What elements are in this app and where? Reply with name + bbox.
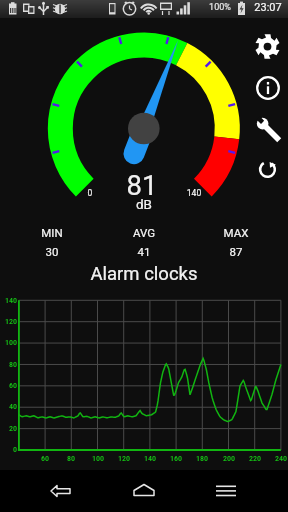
staticText: 100 <box>87 454 109 463</box>
staticText: 100% <box>204 2 236 13</box>
staticText: 200 <box>218 454 240 463</box>
button[interactable]: Refresh <box>247 149 288 190</box>
staticText: 140 <box>124 188 264 198</box>
button[interactable]: Back <box>17 470 91 512</box>
button[interactable]: Home <box>107 470 181 512</box>
staticText: dB <box>74 196 214 212</box>
staticText: 180 <box>191 454 213 463</box>
staticText: 20 <box>0 424 17 433</box>
staticText: 140 <box>0 296 17 305</box>
staticText: 140 <box>139 454 161 463</box>
button[interactable]: Info <box>247 67 288 108</box>
staticText: AVG <box>74 226 214 239</box>
staticText: MAX <box>166 226 288 239</box>
staticText: Alarm clocks <box>74 263 214 285</box>
staticText: 0 <box>20 188 160 198</box>
staticText: 60 <box>34 454 56 463</box>
staticText: 87 <box>166 245 288 258</box>
staticText: 80 <box>0 360 17 369</box>
staticText: 120 <box>113 454 135 463</box>
staticText: 40 <box>0 402 17 411</box>
staticText: 81 <box>72 169 212 201</box>
staticText: 120 <box>0 317 17 326</box>
staticText: 220 <box>244 454 266 463</box>
staticText: 41 <box>74 245 214 258</box>
button[interactable]: Recents <box>198 470 272 512</box>
button[interactable]: Tools <box>247 108 288 149</box>
staticText: 23:07 <box>249 1 287 14</box>
staticText: 60 <box>0 381 17 390</box>
button[interactable]: Settings <box>247 26 288 67</box>
staticText: 0 <box>0 445 17 454</box>
staticText: 30 <box>0 245 122 258</box>
staticText: 80 <box>60 454 82 463</box>
staticText: 240 <box>270 454 288 463</box>
staticText: 100 <box>0 338 17 347</box>
staticText: 160 <box>165 454 187 463</box>
staticText: MIN <box>0 226 122 239</box>
